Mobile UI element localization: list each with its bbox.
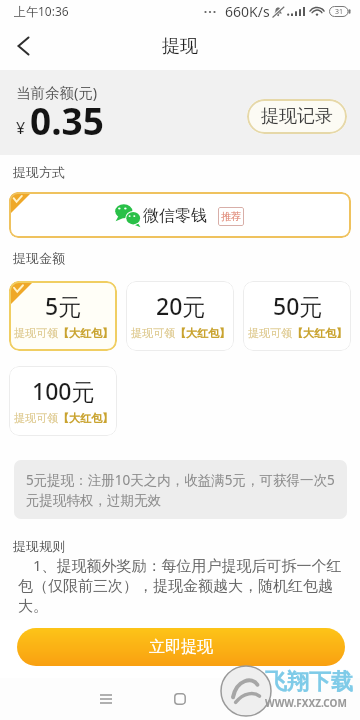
button[interactable]: 50元: [243, 281, 351, 351]
staticText: 提现记录: [261, 105, 333, 128]
staticText: 100元: [32, 375, 95, 406]
staticText: 5元: [45, 290, 82, 321]
button[interactable]: 20元: [126, 281, 234, 351]
staticText: 提现可领: [131, 326, 175, 340]
staticText: 上午10:36: [14, 3, 69, 19]
staticText: 飞翔下载: [265, 668, 353, 696]
staticText: 660K/s: [225, 2, 270, 21]
staticText: 微信零钱: [143, 206, 207, 226]
staticText: 31: [335, 7, 344, 17]
button[interactable]: 提现记录: [247, 99, 347, 134]
staticText: 提现金额: [13, 250, 65, 266]
staticText: 提现可领: [14, 411, 58, 425]
button[interactable]: 立即提现: [17, 628, 345, 666]
staticText: 50元: [273, 290, 323, 321]
button[interactable]: Home: [160, 679, 200, 719]
staticText: 提现规则: [13, 538, 65, 554]
staticText: 1、提现额外奖励：每位用户提现后可拆一个红包（仅限前三次），提现金额越大，随机红…: [18, 555, 342, 615]
button[interactable]: 微信零钱: [9, 192, 351, 238]
staticText: 0.35: [30, 95, 104, 145]
button[interactable]: 5元: [9, 281, 117, 351]
staticText: 提现可领: [248, 326, 292, 340]
staticText: WWW.FXXZ.COM: [265, 696, 347, 710]
staticText: 推荐: [221, 210, 241, 223]
button[interactable]: Recent apps: [86, 679, 126, 719]
staticText: 立即提现: [149, 637, 213, 657]
staticText: 提现方式: [13, 164, 65, 180]
staticText: 提现: [162, 35, 198, 58]
staticText: 提现可领: [14, 326, 58, 340]
button[interactable]: 100元: [9, 366, 117, 436]
staticText: 【大红包】: [58, 326, 113, 340]
staticText: 20元: [156, 290, 206, 321]
staticText: 【大红包】: [175, 326, 230, 340]
staticText: 5元提现：注册10天之内，收益满5元，可获得一次5元提现特权，过期无效: [26, 471, 337, 509]
button[interactable]: Back: [0, 23, 46, 69]
staticText: ¥: [16, 117, 26, 139]
staticText: 当前余额(元): [16, 82, 98, 102]
staticText: 【大红包】: [58, 411, 113, 425]
staticText: 【大红包】: [292, 326, 347, 340]
